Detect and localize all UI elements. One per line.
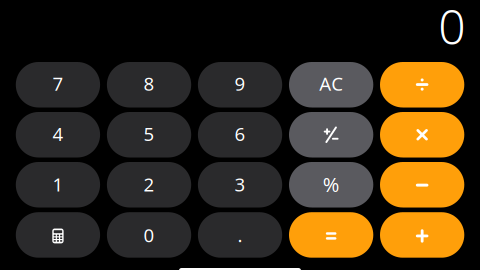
button[interactable]: Equals xyxy=(289,212,373,258)
button[interactable]: Divide xyxy=(380,62,464,107)
staticText: 1 xyxy=(52,172,63,197)
button[interactable]: AC xyxy=(289,62,373,107)
button[interactable]: 1 xyxy=(16,162,100,207)
button[interactable]: 3 xyxy=(198,162,282,207)
button[interactable]: 5 xyxy=(107,112,191,157)
staticText: 0 xyxy=(438,0,465,58)
button[interactable]: Multiply xyxy=(380,112,464,157)
button[interactable]: Add xyxy=(380,212,464,258)
staticText: 3 xyxy=(235,172,246,197)
staticText: 9 xyxy=(235,71,246,96)
button[interactable]: 6 xyxy=(198,112,282,157)
staticText: 0 xyxy=(144,223,155,247)
staticText: . xyxy=(238,223,243,247)
button[interactable]: 4 xyxy=(16,112,100,157)
staticText: AC xyxy=(319,71,343,96)
staticText: 8 xyxy=(144,71,155,96)
staticText: 5 xyxy=(144,121,155,146)
staticText: 7 xyxy=(52,71,63,96)
staticText: 2 xyxy=(144,172,155,197)
staticText: 4 xyxy=(52,121,63,146)
button[interactable]: % xyxy=(289,162,373,207)
button[interactable]: . xyxy=(198,212,282,258)
button[interactable]: 2 xyxy=(107,162,191,207)
button[interactable]: 9 xyxy=(198,62,282,107)
staticText: 6 xyxy=(235,121,246,146)
button[interactable]: 0 xyxy=(107,212,191,258)
staticText: % xyxy=(323,171,340,197)
button[interactable]: Plus or minus xyxy=(289,112,373,157)
button[interactable]: Subtract xyxy=(380,162,464,207)
button[interactable]: 7 xyxy=(16,62,100,107)
button[interactable]: Calculator mode xyxy=(16,212,100,258)
button[interactable]: 8 xyxy=(107,62,191,107)
